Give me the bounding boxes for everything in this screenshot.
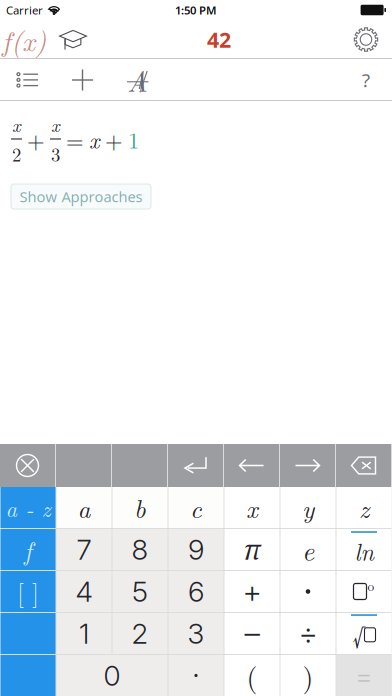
staticText: 1 — [79, 617, 89, 650]
staticText: + — [242, 573, 261, 610]
button[interactable]: 0 — [56, 655, 167, 696]
button[interactable]: Multiply — [280, 571, 335, 612]
button[interactable]: 5 — [112, 571, 167, 612]
staticText: ) — [302, 656, 313, 695]
button[interactable]: Decimal point — [168, 655, 223, 696]
staticText: ( — [246, 656, 257, 695]
staticText: [ ] — [17, 574, 39, 609]
staticText: 4 — [75, 575, 92, 608]
staticText: x — [89, 123, 100, 155]
staticText: A — [127, 60, 148, 100]
staticText: + — [27, 123, 45, 155]
staticText: 6 — [188, 575, 204, 608]
button[interactable]: 3 — [168, 613, 223, 654]
staticText: 3 — [187, 617, 204, 650]
button[interactable]: 2 — [112, 613, 167, 654]
staticText: z — [359, 490, 369, 525]
staticText: 1 — [128, 123, 139, 155]
staticText: x — [12, 111, 21, 137]
button[interactable]: 4 — [56, 571, 111, 612]
button[interactable]: c — [168, 487, 223, 528]
staticText: 1:50 PM — [175, 2, 217, 18]
staticText: = — [355, 659, 373, 692]
button[interactable]: = — [336, 655, 391, 696]
staticText: ? — [362, 67, 370, 93]
staticText: e — [302, 531, 314, 568]
button[interactable]: b — [112, 487, 167, 528]
button[interactable]: Functions — [0, 20, 48, 58]
button[interactable]: – — [224, 613, 279, 654]
staticText: f — [24, 532, 32, 567]
button[interactable]: 7 — [56, 529, 111, 570]
button[interactable]: 9 — [168, 529, 223, 570]
button[interactable]: ) — [280, 655, 335, 696]
staticText: b — [134, 490, 146, 525]
button[interactable]: Dismiss keyboard — [0, 444, 55, 487]
button[interactable]: ( — [224, 655, 279, 696]
staticText: 3 — [51, 140, 60, 167]
staticText: ln — [354, 534, 373, 568]
button[interactable]: History — [0, 59, 55, 101]
button[interactable]: Learn — [48, 20, 98, 58]
button[interactable]: Natural log — [336, 529, 391, 570]
staticText: = — [66, 123, 84, 155]
button[interactable]: Power — [336, 571, 391, 612]
button[interactable]: Clear variables — [110, 59, 165, 101]
staticText: 2 — [12, 140, 21, 167]
button[interactable] — [0, 655, 55, 696]
staticText: 42 — [207, 25, 231, 54]
button[interactable]: 1 — [56, 613, 111, 654]
button[interactable]: f — [0, 529, 55, 570]
staticText: 5 — [132, 575, 148, 608]
staticText: y — [302, 490, 314, 525]
button[interactable] — [0, 613, 55, 654]
button[interactable]: e — [280, 529, 335, 570]
staticText: Show Approaches — [19, 186, 142, 206]
button[interactable]: Square root — [336, 613, 391, 654]
button[interactable]: Move left — [224, 444, 279, 487]
button[interactable]: z — [336, 487, 391, 528]
button[interactable]: a - z — [0, 487, 55, 528]
staticText: + — [105, 123, 123, 155]
staticText: 2 — [131, 617, 148, 650]
staticText: √ — [352, 617, 364, 653]
button[interactable]: Move right — [280, 444, 335, 487]
staticText: o — [367, 576, 374, 595]
button[interactable]: a — [56, 487, 111, 528]
button[interactable]: Settings — [340, 20, 392, 58]
button[interactable]: Add — [55, 59, 110, 101]
button[interactable]: Help — [340, 59, 392, 101]
button[interactable]: [ ] — [0, 571, 55, 612]
button[interactable]: x — [224, 487, 279, 528]
staticText: 9 — [188, 533, 204, 566]
staticText: – — [244, 615, 259, 652]
button[interactable]: Show Approaches — [11, 184, 151, 209]
staticText: Carrier — [6, 2, 43, 18]
button[interactable]: 8 — [112, 529, 167, 570]
staticText: ÷ — [298, 615, 317, 652]
button[interactable]: Return — [168, 444, 223, 487]
staticText: c — [190, 490, 202, 525]
staticText: x — [246, 490, 258, 525]
staticText: f(x) — [2, 20, 46, 59]
button[interactable]: π — [224, 529, 279, 570]
staticText: π — [243, 531, 260, 568]
staticText: a - z — [5, 491, 50, 524]
button[interactable]: Delete — [336, 444, 391, 487]
staticText: 7 — [76, 533, 91, 566]
staticText: 8 — [131, 533, 148, 566]
button[interactable]: 6 — [168, 571, 223, 612]
staticText: a — [77, 490, 90, 525]
button[interactable]: y — [280, 487, 335, 528]
button[interactable]: ÷ — [280, 613, 335, 654]
button[interactable]: + — [224, 571, 279, 612]
staticText: 0 — [103, 659, 120, 692]
staticText: x — [51, 111, 60, 137]
